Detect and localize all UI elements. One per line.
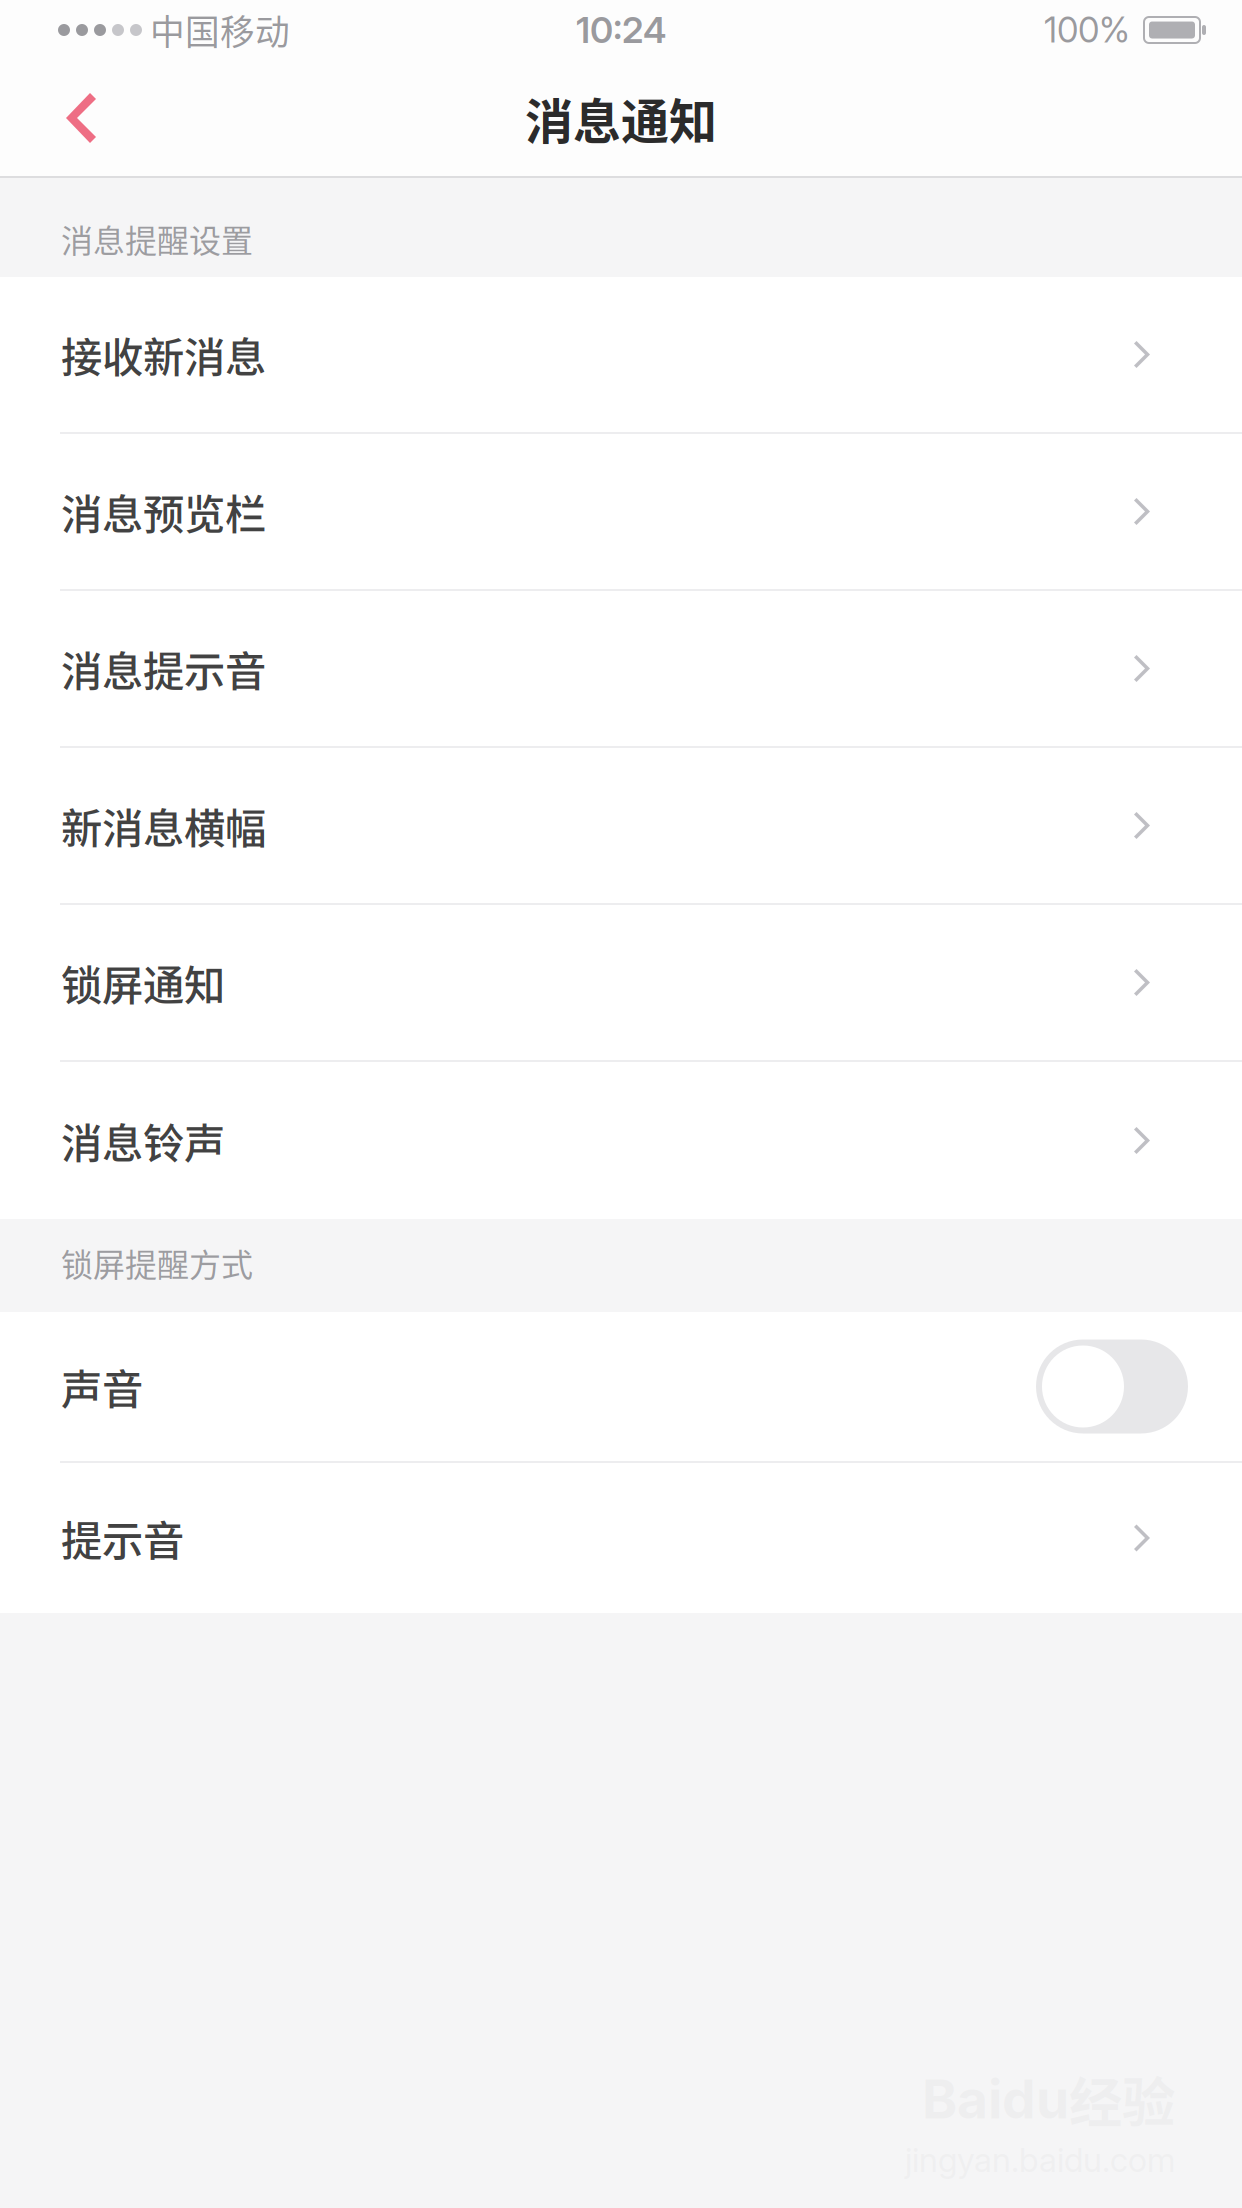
staticText: 10:24 <box>576 8 666 52</box>
staticText: 锁屏通知 <box>61 953 225 1012</box>
button[interactable]: 消息铃声 <box>0 1062 1242 1219</box>
staticText: 100% <box>1044 9 1130 51</box>
button[interactable]: 新消息横幅 <box>0 748 1242 905</box>
staticText: 提示音 <box>61 1508 184 1568</box>
staticText: 消息铃声 <box>61 1111 225 1170</box>
button[interactable]: 锁屏通知 <box>0 905 1242 1062</box>
staticText: 中国移动 <box>142 5 290 55</box>
staticText: 消息预览栏 <box>61 482 266 541</box>
button[interactable]: 接收新消息 <box>0 277 1242 434</box>
button[interactable]: 提示音 <box>0 1463 1242 1613</box>
staticText: 消息提示音 <box>61 639 266 698</box>
button[interactable]: 声音 <box>0 1312 1242 1463</box>
button[interactable]: 消息预览栏 <box>0 434 1242 591</box>
staticText: Baidu <box>922 2067 1069 2131</box>
staticText: 接收新消息 <box>61 325 266 384</box>
button[interactable]: 返回 <box>0 60 136 176</box>
staticText: 锁屏提醒方式 <box>61 1240 253 1286</box>
staticText: 新消息横幅 <box>61 796 266 855</box>
button[interactable]: 消息提示音 <box>0 591 1242 748</box>
staticText: 经验 <box>1069 2060 1175 2138</box>
staticText: 消息通知 <box>525 83 717 153</box>
staticText: 消息提醒设置 <box>61 216 253 262</box>
staticText: 声音 <box>61 1357 143 1416</box>
